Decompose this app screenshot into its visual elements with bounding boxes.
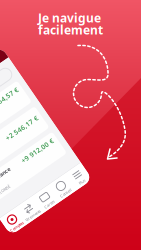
button[interactable]: Plus xyxy=(36,202,55,220)
staticText: +664,57 € xyxy=(13,100,45,109)
staticText: Je navigue xyxy=(38,10,101,26)
button[interactable]: Conseil xyxy=(16,202,36,220)
staticText: +2 546,17 € xyxy=(7,135,45,144)
staticText: Cartes xyxy=(0,215,12,220)
staticText: +9 912,00 € xyxy=(7,162,45,171)
staticText: Conseil xyxy=(19,215,32,220)
staticText: facilement xyxy=(38,22,103,38)
button[interactable]: Cartes xyxy=(0,202,16,220)
